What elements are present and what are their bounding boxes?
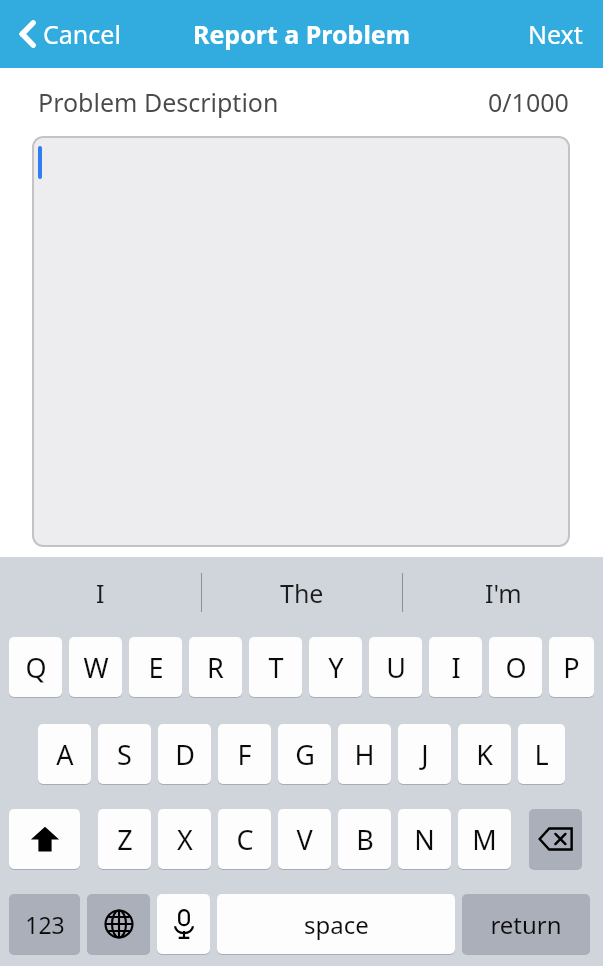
staticText: N bbox=[414, 821, 435, 858]
button[interactable]: R bbox=[189, 637, 242, 697]
staticText: Q bbox=[25, 649, 47, 686]
staticText: S bbox=[117, 736, 132, 773]
button[interactable]: C bbox=[218, 809, 271, 869]
button[interactable]: K bbox=[458, 724, 511, 784]
button[interactable]: G bbox=[278, 724, 331, 784]
button[interactable]: X bbox=[158, 809, 211, 869]
staticText: G bbox=[295, 736, 315, 773]
button[interactable]: space bbox=[217, 894, 455, 954]
button[interactable]: I bbox=[429, 637, 482, 697]
staticText: F bbox=[237, 736, 252, 773]
button[interactable]: Shift bbox=[9, 809, 80, 869]
staticText: D bbox=[175, 736, 195, 773]
button[interactable]: Dictation bbox=[157, 894, 210, 954]
button[interactable]: The bbox=[202, 557, 402, 628]
button[interactable]: return bbox=[462, 894, 590, 954]
staticText: 0/1000 bbox=[488, 85, 569, 119]
button[interactable]: N bbox=[398, 809, 451, 869]
button[interactable]: 123 bbox=[9, 894, 80, 954]
button[interactable]: Switch keyboard bbox=[87, 894, 150, 954]
button[interactable]: T bbox=[249, 637, 302, 697]
button[interactable]: Backspace bbox=[529, 809, 582, 869]
staticText: B bbox=[356, 821, 374, 858]
staticText: Cancel bbox=[43, 17, 121, 51]
button[interactable]: Z bbox=[98, 809, 151, 869]
button[interactable]: L bbox=[518, 724, 565, 784]
button[interactable]: A bbox=[38, 724, 91, 784]
button[interactable]: S bbox=[98, 724, 151, 784]
button[interactable]: D bbox=[158, 724, 211, 784]
button[interactable]: I bbox=[0, 557, 201, 628]
staticText: Report a Problem bbox=[193, 17, 411, 51]
button[interactable]: E bbox=[129, 637, 182, 697]
staticText: J bbox=[421, 736, 429, 773]
staticText: 123 bbox=[25, 909, 65, 940]
button[interactable]: W bbox=[69, 637, 122, 697]
staticText: space bbox=[304, 908, 369, 941]
button[interactable]: H bbox=[338, 724, 391, 784]
staticText: O bbox=[505, 649, 527, 686]
staticText: Next bbox=[528, 17, 583, 51]
staticText: X bbox=[177, 821, 193, 858]
staticText: M bbox=[472, 821, 497, 858]
button[interactable]: V bbox=[278, 809, 331, 869]
staticText: Y bbox=[328, 649, 344, 686]
staticText: V bbox=[296, 821, 313, 858]
button[interactable]: Cancel bbox=[14, 11, 127, 57]
button[interactable]: Y bbox=[309, 637, 362, 697]
button[interactable]: I'm bbox=[403, 557, 603, 628]
staticText: return bbox=[490, 908, 562, 941]
staticText: Z bbox=[117, 821, 133, 858]
button[interactable]: Q bbox=[9, 637, 62, 697]
button[interactable]: B bbox=[338, 809, 391, 869]
button[interactable]: P bbox=[549, 637, 594, 697]
button[interactable]: O bbox=[489, 637, 542, 697]
staticText: C bbox=[236, 821, 254, 858]
staticText: H bbox=[354, 736, 375, 773]
button[interactable]: J bbox=[398, 724, 451, 784]
button[interactable]: U bbox=[369, 637, 422, 697]
staticText: I bbox=[96, 576, 105, 610]
button[interactable]: Next bbox=[522, 11, 589, 57]
staticText: R bbox=[207, 649, 224, 686]
staticText: Problem Description bbox=[38, 85, 279, 119]
staticText: L bbox=[534, 736, 549, 773]
staticText: U bbox=[386, 649, 406, 686]
staticText: I'm bbox=[485, 576, 522, 610]
staticText: A bbox=[56, 736, 74, 773]
staticText: P bbox=[563, 649, 580, 686]
staticText: T bbox=[268, 649, 284, 686]
staticText: I bbox=[451, 649, 461, 686]
staticText: K bbox=[476, 736, 493, 773]
button[interactable]: M bbox=[458, 809, 511, 869]
staticText: E bbox=[148, 649, 164, 686]
button[interactable]: F bbox=[218, 724, 271, 784]
staticText: W bbox=[83, 649, 109, 686]
staticText: The bbox=[280, 576, 324, 610]
button[interactable] bbox=[32, 136, 570, 547]
